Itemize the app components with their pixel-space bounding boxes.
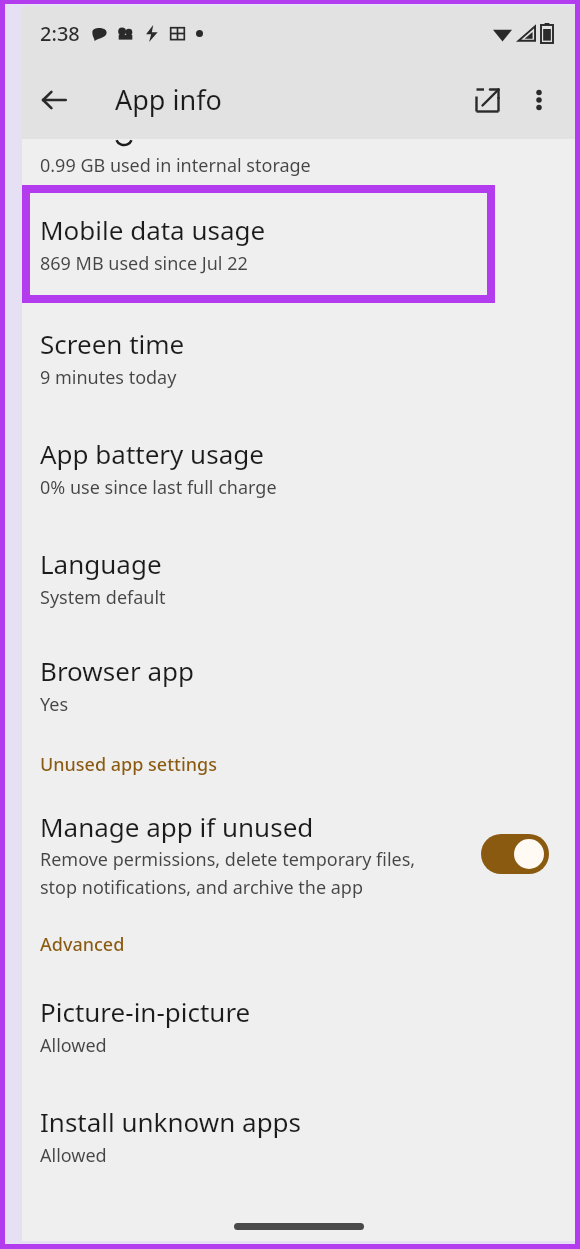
button[interactable]: Picture-in-picture bbox=[22, 971, 575, 1081]
button[interactable]: Language bbox=[22, 523, 575, 633]
staticText: 9 minutes today bbox=[40, 365, 177, 390]
staticText: Allowed bbox=[40, 1033, 107, 1058]
button[interactable]: Open in new bbox=[461, 74, 513, 126]
staticText: Language bbox=[40, 546, 162, 581]
staticText: Browser app bbox=[40, 653, 194, 688]
button[interactable]: 0.99 GB used in internal storage bbox=[22, 139, 575, 185]
button[interactable]: Back bbox=[28, 74, 80, 126]
staticText: Advanced bbox=[40, 932, 125, 957]
button[interactable]: More options bbox=[513, 74, 565, 126]
staticText: stop notifications, and archive the app bbox=[40, 875, 363, 900]
button[interactable]: Manage app if unused bbox=[22, 791, 575, 917]
staticText: Allowed bbox=[40, 1143, 107, 1168]
button[interactable]: Manage app if unused toggle bbox=[481, 834, 549, 874]
button[interactable]: Mobile data usage bbox=[22, 185, 495, 303]
staticText: Install unknown apps bbox=[40, 1104, 302, 1139]
button[interactable]: Browser app bbox=[22, 633, 575, 737]
staticText: 0.99 GB used in internal storage bbox=[40, 153, 311, 178]
staticText: 0% use since last full charge bbox=[40, 475, 277, 500]
staticText: Manage app if unused bbox=[40, 809, 314, 844]
staticText: Unused app settings bbox=[40, 752, 217, 777]
staticText: Screen time bbox=[40, 326, 185, 361]
button[interactable]: Install unknown apps bbox=[22, 1081, 575, 1191]
staticText: 2:38 bbox=[40, 20, 80, 47]
button[interactable]: App battery usage bbox=[22, 413, 575, 523]
staticText: App battery usage bbox=[40, 436, 264, 471]
staticText: System default bbox=[40, 585, 166, 610]
staticText: App info bbox=[115, 81, 222, 118]
staticText: Remove permissions, delete temporary fil… bbox=[40, 847, 416, 872]
staticText: 869 MB used since Jul 22 bbox=[40, 251, 248, 276]
staticText: Mobile data usage bbox=[40, 212, 266, 247]
button[interactable]: Screen time bbox=[22, 303, 575, 413]
staticText: Picture-in-picture bbox=[40, 994, 251, 1029]
staticText: Yes bbox=[40, 692, 69, 717]
